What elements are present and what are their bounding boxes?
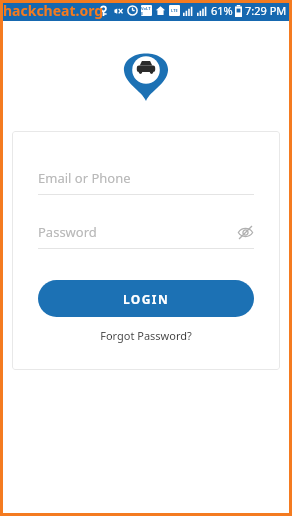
- staticText: 7:29 PM: [245, 3, 287, 18]
- button[interactable]: Password: [38, 223, 254, 249]
- staticText: LTE: [171, 8, 178, 13]
- button[interactable]: Email or Phone: [38, 169, 254, 195]
- button[interactable]: LOGIN: [38, 280, 254, 317]
- staticText: Password: [38, 223, 97, 241]
- staticText: hackcheat.org: [3, 1, 104, 20]
- staticText: LOGIN: [123, 291, 170, 307]
- staticText: Forgot Password?: [100, 328, 192, 343]
- staticText: Email or Phone: [38, 169, 131, 187]
- button[interactable]: Forgot Password?: [38, 325, 254, 346]
- staticText: 61%: [211, 3, 233, 18]
- staticText: VoLTE: [141, 6, 152, 16]
- other: Show password: [237, 224, 254, 241]
